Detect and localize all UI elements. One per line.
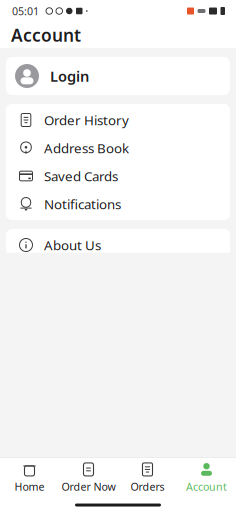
staticText: Account: [11, 23, 81, 46]
staticText: Login: [50, 66, 89, 86]
staticText: Notifications: [44, 195, 121, 213]
button[interactable]: Orders: [118, 459, 177, 497]
staticText: Saved Cards: [44, 167, 118, 185]
button[interactable]: Account: [177, 459, 236, 497]
staticText: 05:01: [12, 4, 39, 18]
staticText: Orders: [130, 479, 164, 494]
staticText: About Us: [44, 236, 101, 254]
button[interactable]: About Us: [6, 231, 230, 259]
staticText: Address Book: [44, 139, 129, 157]
button[interactable]: Saved Cards: [6, 162, 230, 190]
button[interactable]: Notifications: [6, 190, 230, 218]
staticText: Home: [14, 479, 44, 494]
button[interactable]: Order History: [6, 106, 230, 134]
button[interactable]: Home: [0, 459, 59, 497]
button[interactable]: Order Now: [59, 459, 118, 497]
button[interactable]: Address Book: [6, 134, 230, 162]
button[interactable]: Login: [6, 57, 230, 95]
staticText: Order Now: [61, 479, 115, 494]
staticText: Account: [186, 479, 227, 494]
staticText: Order History: [44, 111, 129, 129]
